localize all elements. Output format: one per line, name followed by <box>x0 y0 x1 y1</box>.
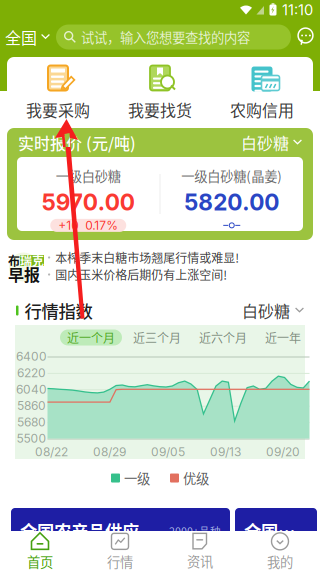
staticText: 我的 <box>267 552 293 570</box>
button[interactable]: 一级白砂糖(晶姜) <box>160 157 303 231</box>
button[interactable]: 全国 <box>0 24 56 50</box>
staticText: 试试，输入您想要查找的内容 <box>81 27 250 47</box>
staticText: 布 <box>8 252 20 269</box>
staticText: 2000+品种 <box>169 523 221 538</box>
staticText: 国内玉米价格后期仍有上涨空间! <box>55 266 227 283</box>
staticText: 近一个月 <box>67 329 115 346</box>
button[interactable]: 近三个月 <box>126 329 188 345</box>
staticText: 5970.00 <box>42 188 135 216</box>
button[interactable]: 国内玉米价格后期仍有上涨空间! <box>48 267 313 282</box>
staticText: 全国 <box>5 25 37 49</box>
staticText: 全国农产品 <box>244 518 308 543</box>
button[interactable]: 我的 <box>240 531 320 570</box>
button[interactable]: 全国农产品 <box>235 508 317 570</box>
staticText: 近一年 <box>265 329 301 346</box>
staticText: 我要采购 <box>26 98 90 121</box>
staticText: 09/20 <box>266 445 300 459</box>
button[interactable]: 资讯 <box>160 531 240 570</box>
staticText: 一级 <box>124 468 150 488</box>
button[interactable]: 近六个月 <box>192 329 254 345</box>
staticText: 08/29 <box>93 445 126 459</box>
button[interactable]: 一级白砂糖 <box>17 157 159 231</box>
staticText: 09/05 <box>151 445 185 459</box>
button[interactable]: 消息 <box>291 24 320 50</box>
staticText: 我要找货 <box>128 98 192 121</box>
staticText: 0.17% <box>85 218 118 233</box>
staticText: 资讯 <box>187 551 213 570</box>
staticText: 6220 <box>17 366 46 380</box>
button[interactable]: 行情 <box>80 531 160 570</box>
staticText: 6040 <box>16 382 47 396</box>
button[interactable]: 近一个月 <box>60 329 122 345</box>
button[interactable]: 白砂糖 <box>241 133 302 151</box>
staticText: 早报 <box>8 262 40 286</box>
staticText: +10 <box>58 218 79 233</box>
staticText: 5680 <box>17 415 46 429</box>
staticText: 08/22 <box>35 445 68 459</box>
button[interactable]: 我要找货 <box>109 57 211 122</box>
button[interactable]: 白砂糖 <box>242 301 304 319</box>
staticText: 白砂糖 <box>241 131 289 154</box>
staticText: 首页 <box>27 552 53 570</box>
staticText: 优级 <box>183 468 209 488</box>
staticText: 11:10 <box>282 1 313 19</box>
button[interactable]: 我要采购 <box>7 57 109 122</box>
button[interactable]: 本榨季末白糖市场翘尾行情或难显! <box>48 250 313 265</box>
staticText: 一级白砂糖(晶姜) <box>181 166 282 185</box>
staticText: 瑞克 <box>20 252 44 269</box>
staticText: 全国农产品供应 <box>20 518 139 543</box>
staticText: 实时报价 (元/吨) <box>18 131 136 154</box>
button[interactable]: 农购信用 <box>211 57 313 122</box>
staticText: 农购信用 <box>230 98 294 121</box>
staticText: 近六个月 <box>199 329 247 346</box>
staticText: 近三个月 <box>133 329 181 346</box>
staticText: 行情 <box>107 552 133 570</box>
staticText: 5500 <box>16 431 46 446</box>
staticText: 行情指数 <box>24 298 92 323</box>
button[interactable]: 首页 <box>0 531 80 570</box>
staticText: 一级白砂糖 <box>56 166 121 185</box>
button[interactable]: 试试，输入您想要查找的内容 <box>56 24 291 49</box>
staticText: 09/13 <box>210 445 241 459</box>
button[interactable]: 全国农产品供应 <box>11 508 230 570</box>
staticText: 6400 <box>16 349 47 364</box>
staticText: 5820.00 <box>184 188 279 216</box>
staticText: 白砂糖 <box>242 299 290 322</box>
staticText: 5860 <box>17 398 46 413</box>
button[interactable]: 近一年 <box>258 329 308 345</box>
staticText: 本榨季末白糖市场翘尾行情或难显! <box>55 249 239 266</box>
